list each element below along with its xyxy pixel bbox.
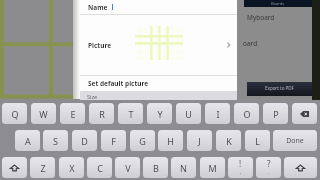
button[interactable]: Picture <box>80 15 237 75</box>
button[interactable]: J <box>187 130 212 151</box>
button[interactable]: Z <box>30 157 55 178</box>
staticText: Export to PDF <box>265 85 294 91</box>
button[interactable]: ⇧ <box>2 157 27 178</box>
button[interactable]: A <box>15 130 40 151</box>
button[interactable]: H <box>158 130 183 151</box>
staticText: Q <box>11 108 19 120</box>
staticText: A <box>25 135 31 147</box>
button[interactable]: T <box>118 103 143 124</box>
staticText: Boards <box>271 1 285 6</box>
staticText: M <box>208 162 217 174</box>
staticText: Size <box>87 93 98 100</box>
button[interactable]: S <box>43 130 68 151</box>
button[interactable]: L <box>245 130 270 151</box>
button[interactable]: N <box>171 157 196 178</box>
button[interactable]: E <box>60 103 85 124</box>
button[interactable]: ⇧ <box>284 157 317 178</box>
button[interactable]: I <box>205 103 230 124</box>
staticText: B <box>153 162 159 174</box>
staticText: Set default picture <box>88 79 149 88</box>
staticText: oard <box>243 39 258 48</box>
staticText: Y <box>157 108 163 120</box>
staticText: F <box>111 135 116 147</box>
button[interactable]: Set default picture <box>80 76 237 91</box>
other: Choose picture <box>225 41 233 49</box>
staticText: O <box>243 108 251 120</box>
staticText: C <box>97 162 103 174</box>
staticText: ? <box>267 158 271 169</box>
staticText: Picture <box>88 41 112 50</box>
staticText: Name <box>88 3 108 12</box>
button[interactable]: R <box>89 103 114 124</box>
button[interactable]: Export to PDF <box>247 82 312 96</box>
button[interactable]: U <box>176 103 201 124</box>
button[interactable]: oard <box>243 37 312 50</box>
staticText: V <box>125 162 131 174</box>
button[interactable]: V <box>115 157 140 178</box>
staticText: L <box>255 135 260 147</box>
button[interactable]: ⌫ <box>292 103 317 124</box>
button[interactable]: C <box>87 157 112 178</box>
staticText: , <box>240 168 242 176</box>
staticText: ! <box>239 158 242 169</box>
staticText: G <box>139 135 146 147</box>
staticText: T <box>128 108 134 120</box>
button[interactable]: ? <box>256 157 281 178</box>
button[interactable]: G <box>130 130 155 151</box>
staticText: J <box>198 135 201 147</box>
staticText: . <box>268 168 270 176</box>
staticText: D <box>81 135 88 147</box>
button[interactable]: D <box>72 130 97 151</box>
staticText: H <box>167 135 174 147</box>
staticText: U <box>185 108 192 120</box>
staticText: S <box>53 135 58 147</box>
button[interactable]: F <box>101 130 126 151</box>
staticText: Myboard <box>247 13 275 22</box>
button[interactable]: K <box>216 130 241 151</box>
staticText: K <box>226 135 232 147</box>
button[interactable]: W <box>31 103 56 124</box>
staticText: Z <box>40 162 46 174</box>
button[interactable]: Done <box>273 130 317 151</box>
staticText: W <box>39 108 48 120</box>
staticText: Done <box>286 136 304 146</box>
button[interactable]: Q <box>2 103 27 124</box>
staticText: E <box>70 108 76 120</box>
button[interactable]: Size <box>80 91 237 100</box>
button[interactable]: Myboard <box>243 11 312 24</box>
button[interactable]: Y <box>147 103 172 124</box>
button[interactable]: ! <box>228 157 253 178</box>
staticText: I <box>216 108 220 120</box>
button[interactable]: P <box>263 103 288 124</box>
button[interactable]: M <box>200 157 225 178</box>
staticText: R <box>99 108 105 120</box>
button[interactable]: Name <box>80 0 237 14</box>
button[interactable]: B <box>143 157 168 178</box>
staticText: N <box>180 162 187 174</box>
staticText: P <box>273 108 279 120</box>
button[interactable]: O <box>234 103 259 124</box>
staticText: X <box>69 162 75 174</box>
button[interactable]: X <box>59 157 84 178</box>
